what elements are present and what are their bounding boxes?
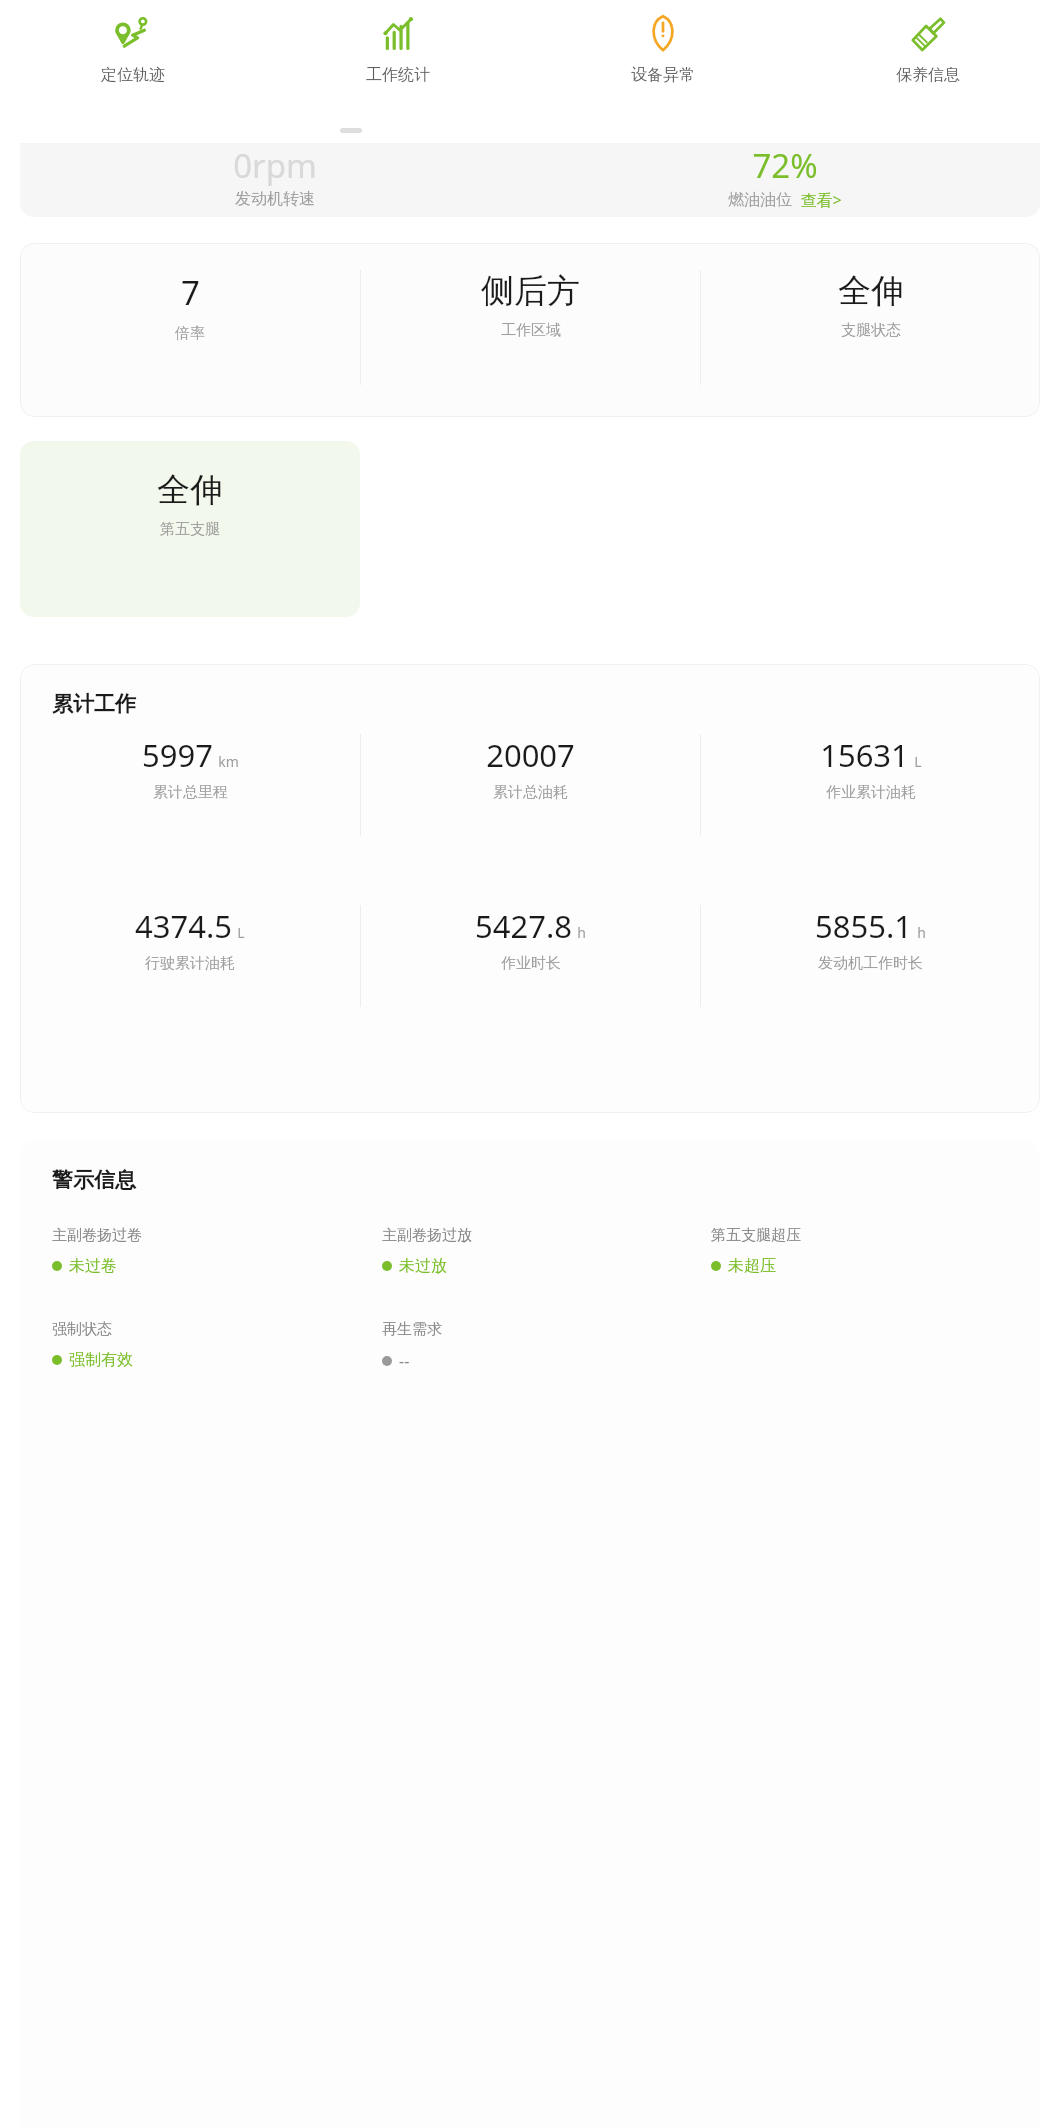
staticText: 作业时长	[501, 954, 561, 973]
staticText: km	[218, 752, 239, 771]
button[interactable]: 全伸	[20, 441, 360, 617]
staticText: 未过放	[399, 1256, 447, 1276]
staticText: 5997	[142, 734, 213, 776]
button[interactable]: 设备异常	[530, 0, 795, 85]
staticText: 定位轨迹	[101, 65, 165, 85]
button[interactable]: 工作统计	[265, 0, 530, 85]
staticText: h	[577, 923, 586, 942]
staticText: h	[917, 923, 926, 942]
staticText: 7	[181, 270, 200, 315]
staticText: 累计总油耗	[493, 783, 568, 802]
staticText: 全伸	[157, 469, 223, 511]
staticText: 发动机转速	[235, 189, 315, 209]
staticText: 72%	[752, 143, 818, 188]
staticText: 设备异常	[631, 65, 695, 85]
staticText: 5427.8	[475, 905, 572, 947]
other: 保养信息	[909, 15, 947, 53]
staticText: 强制有效	[69, 1350, 133, 1370]
button[interactable]: 定位轨迹	[0, 0, 265, 85]
staticText: 工作统计	[366, 65, 430, 85]
button[interactable]: 7	[20, 243, 1040, 417]
staticText: 第五支腿超压	[711, 1226, 801, 1245]
staticText: --	[399, 1350, 410, 1372]
staticText: L	[914, 752, 922, 771]
staticText: 第五支腿	[160, 520, 220, 539]
staticText: 主副卷扬过放	[382, 1226, 472, 1245]
button[interactable]: 0rpm	[20, 143, 1040, 217]
staticText: 倍率	[175, 324, 205, 343]
staticText: 主副卷扬过卷	[52, 1226, 142, 1245]
staticText: 15631	[820, 734, 909, 776]
button[interactable]: 查看>	[800, 189, 842, 211]
staticText: 燃油油位	[728, 190, 792, 210]
staticText: 0rpm	[233, 143, 317, 188]
staticText: L	[237, 923, 245, 942]
staticText: 支腿状态	[841, 321, 901, 340]
staticText: 累计工作	[52, 691, 136, 717]
other: 定位轨迹	[114, 15, 152, 53]
staticText: 侧后方	[481, 270, 580, 312]
staticText: 未超压	[728, 1256, 776, 1276]
staticText: 保养信息	[896, 65, 960, 85]
staticText: 全伸	[838, 270, 904, 312]
staticText: 警示信息	[52, 1167, 136, 1193]
staticText: 未过卷	[69, 1256, 117, 1276]
staticText: 工作区域	[501, 321, 561, 340]
staticText: 作业累计油耗	[826, 783, 916, 802]
staticText: 行驶累计油耗	[145, 954, 235, 973]
other: 工作统计	[379, 15, 417, 53]
staticText: 强制状态	[52, 1320, 112, 1339]
staticText: 5855.1	[815, 905, 912, 947]
other: 设备异常	[644, 15, 682, 53]
staticText: 20007	[486, 734, 575, 776]
staticText: 再生需求	[382, 1320, 442, 1339]
button[interactable]: 保养信息	[795, 0, 1060, 85]
staticText: 发动机工作时长	[818, 954, 923, 973]
staticText: 4374.5	[135, 905, 232, 947]
staticText: 累计总里程	[153, 783, 228, 802]
